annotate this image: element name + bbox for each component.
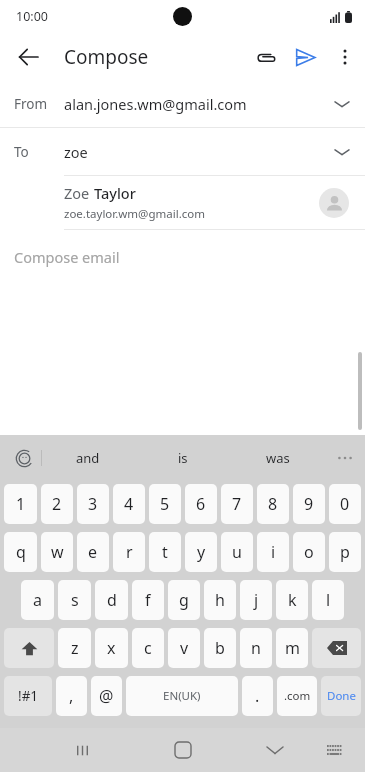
staticText: 7: [232, 493, 242, 515]
button[interactable]: Backspace: [312, 628, 361, 668]
button[interactable]: 2: [41, 484, 73, 524]
button[interactable]: Recents: [62, 730, 102, 770]
button[interactable]: v: [168, 628, 200, 668]
staticText: h: [215, 589, 225, 611]
staticText: y: [197, 541, 206, 563]
staticText: zoe.taylor.wm@gmail.com: [64, 206, 205, 222]
staticText: n: [251, 637, 261, 659]
staticText: Compose: [64, 44, 149, 70]
button[interactable]: Zoe: [0, 176, 365, 229]
button[interactable]: !#1: [4, 676, 52, 716]
button[interactable]: 7: [221, 484, 253, 524]
button[interactable]: Hide keyboard: [255, 730, 295, 770]
staticText: q: [16, 541, 26, 563]
button[interactable]: k: [276, 580, 308, 620]
staticText: f: [145, 589, 151, 611]
button[interactable]: j: [240, 580, 272, 620]
button[interactable]: o: [293, 532, 325, 572]
staticText: x: [107, 637, 116, 659]
staticText: From: [14, 95, 48, 113]
button[interactable]: To: [0, 128, 365, 175]
button[interactable]: c: [132, 628, 164, 668]
button[interactable]: t: [149, 532, 181, 572]
button[interactable]: u: [221, 532, 253, 572]
button[interactable]: 1: [4, 484, 37, 524]
button[interactable]: is: [178, 449, 188, 467]
button[interactable]: Compose email: [0, 240, 365, 274]
staticText: 0: [340, 493, 350, 515]
button[interactable]: Home: [163, 730, 203, 770]
button[interactable]: h: [204, 580, 236, 620]
staticText: u: [232, 541, 242, 563]
button[interactable]: f: [132, 580, 164, 620]
staticText: e: [88, 541, 98, 563]
button[interactable]: Send: [285, 37, 325, 77]
button[interactable]: 0: [329, 484, 361, 524]
button[interactable]: w: [41, 532, 73, 572]
staticText: Compose email: [14, 247, 120, 267]
button[interactable]: Back: [6, 35, 50, 79]
button[interactable]: z: [58, 628, 91, 668]
button[interactable]: was: [266, 449, 290, 467]
staticText: k: [288, 589, 297, 611]
button[interactable]: ,: [56, 676, 87, 716]
staticText: 1: [16, 493, 26, 515]
staticText: 3: [88, 493, 98, 515]
button[interactable]: 8: [257, 484, 289, 524]
button[interactable]: q: [4, 532, 37, 572]
button[interactable]: 6: [185, 484, 217, 524]
staticText: To: [14, 143, 29, 161]
button[interactable]: m: [276, 628, 308, 668]
staticText: v: [180, 637, 189, 659]
button[interactable]: x: [95, 628, 128, 668]
staticText: s: [71, 589, 79, 611]
button[interactable]: a: [21, 580, 54, 620]
staticText: 9: [304, 493, 314, 515]
button[interactable]: Attach: [245, 37, 285, 77]
button[interactable]: e: [77, 532, 109, 572]
button[interactable]: More options: [325, 37, 365, 77]
button[interactable]: 5: [149, 484, 181, 524]
button[interactable]: @: [91, 676, 122, 716]
button[interactable]: Done: [321, 676, 361, 716]
staticText: Done: [327, 688, 356, 704]
button[interactable]: More suggestions: [331, 444, 359, 472]
staticText: Taylor: [94, 183, 136, 203]
button[interactable]: 9: [293, 484, 325, 524]
button[interactable]: and: [76, 449, 100, 467]
button[interactable]: g: [168, 580, 200, 620]
staticText: 8: [268, 493, 278, 515]
staticText: ,: [69, 685, 74, 707]
button[interactable]: n: [240, 628, 272, 668]
staticText: EN(UK): [163, 688, 201, 704]
staticText: o: [304, 541, 314, 563]
button[interactable]: 3: [77, 484, 109, 524]
button[interactable]: p: [329, 532, 361, 572]
button[interactable]: d: [95, 580, 128, 620]
staticText: w: [51, 541, 64, 563]
staticText: Zoe: [64, 183, 94, 203]
staticText: .com: [284, 688, 311, 704]
button[interactable]: Stickers: [8, 442, 40, 474]
button[interactable]: r: [113, 532, 145, 572]
button[interactable]: .com: [277, 676, 317, 716]
button[interactable]: EN(UK): [126, 676, 238, 716]
button[interactable]: From: [0, 80, 365, 127]
button[interactable]: Change keyboard: [317, 733, 351, 767]
staticText: a: [33, 589, 42, 611]
button[interactable]: b: [204, 628, 236, 668]
button[interactable]: Shift: [4, 628, 54, 668]
button[interactable]: 4: [113, 484, 145, 524]
button[interactable]: l: [312, 580, 344, 620]
staticText: b: [215, 637, 225, 659]
button[interactable]: i: [257, 532, 289, 572]
staticText: alan.jones.wm@gmail.com: [64, 94, 247, 114]
button[interactable]: s: [58, 580, 91, 620]
staticText: l: [326, 589, 331, 611]
staticText: p: [340, 541, 350, 563]
staticText: @: [99, 685, 114, 707]
button[interactable]: .: [242, 676, 273, 716]
button[interactable]: y: [185, 532, 217, 572]
staticText: z: [71, 637, 79, 659]
staticText: j: [254, 589, 259, 611]
